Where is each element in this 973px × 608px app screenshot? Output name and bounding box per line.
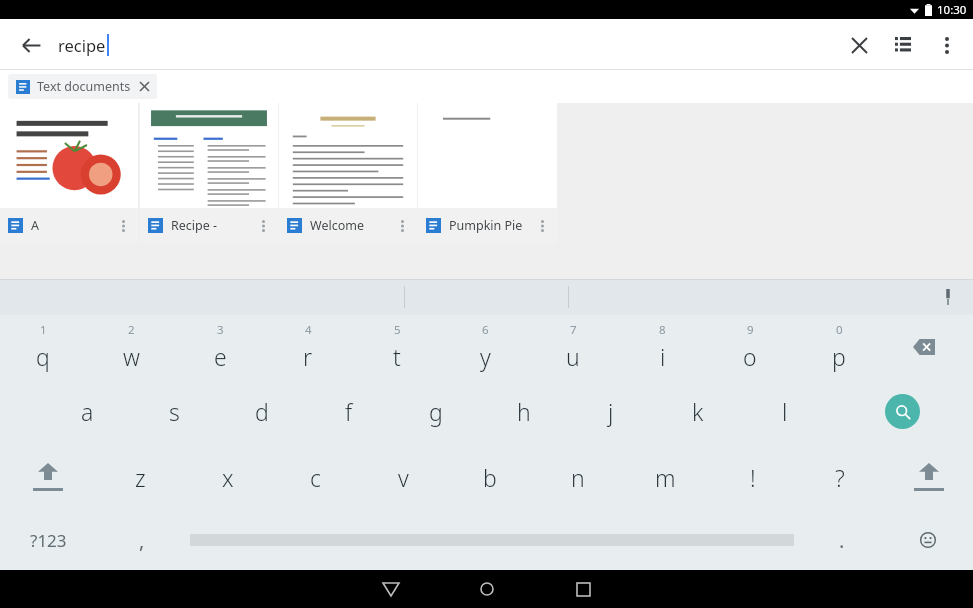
staticText: ?123 xyxy=(30,529,67,552)
button[interactable]: h xyxy=(486,378,562,444)
staticText: 3 xyxy=(217,322,224,338)
staticText: 0 xyxy=(836,322,843,338)
button[interactable]: More options for Recipe - Striped xyxy=(256,215,270,237)
button[interactable]: Clear search xyxy=(837,23,881,67)
button[interactable]: n xyxy=(540,444,616,510)
staticText: s xyxy=(169,396,180,427)
button[interactable]: d xyxy=(224,378,300,444)
button[interactable]: Voice input xyxy=(933,282,963,312)
button[interactable]: j xyxy=(573,378,649,444)
staticText: 9 xyxy=(747,322,754,338)
staticText: d xyxy=(255,396,269,427)
staticText: ! xyxy=(750,462,756,493)
button[interactable]: 7 xyxy=(535,315,611,378)
button[interactable]: 1 xyxy=(5,315,81,378)
button[interactable]: Emoji xyxy=(898,510,958,570)
button[interactable]: 0 xyxy=(801,315,877,378)
staticText: o xyxy=(743,341,757,372)
staticText: c xyxy=(310,462,321,493)
staticText: 10:30 xyxy=(937,2,967,18)
button[interactable]: Backspace xyxy=(900,315,948,378)
button[interactable]: Back xyxy=(14,28,48,62)
button[interactable]: l xyxy=(747,378,823,444)
button[interactable]: More options for A Delicio...recipe xyxy=(116,215,130,237)
button[interactable]: z xyxy=(102,444,178,510)
button[interactable]: g xyxy=(398,378,474,444)
button[interactable]: 5 xyxy=(359,315,435,378)
staticText: Recipe - Striped xyxy=(171,217,256,234)
button[interactable]: ?123 xyxy=(0,510,96,570)
staticText: b xyxy=(483,462,497,493)
button[interactable]: x xyxy=(190,444,266,510)
staticText: u xyxy=(566,341,580,372)
button[interactable]: Text documents xyxy=(8,74,157,99)
staticText: f xyxy=(345,396,353,427)
button[interactable]: 2 xyxy=(93,315,169,378)
staticText: Pumpkin Pie xyxy=(449,217,523,234)
button[interactable]: s xyxy=(136,378,212,444)
button[interactable]: ? xyxy=(802,444,878,510)
staticText: e xyxy=(214,341,227,372)
button[interactable]: Recent apps xyxy=(553,570,613,608)
staticText: 5 xyxy=(394,322,401,338)
button[interactable]: . xyxy=(812,510,872,570)
button[interactable]: Search xyxy=(874,378,930,444)
staticText: w xyxy=(123,341,140,372)
button[interactable]: b xyxy=(452,444,528,510)
staticText: ? xyxy=(835,462,845,493)
staticText: a xyxy=(81,396,94,427)
button[interactable]: 4 xyxy=(270,315,346,378)
staticText: k xyxy=(692,396,704,427)
button[interactable]: More options for Pumpkin Pie xyxy=(535,215,549,237)
staticText: l xyxy=(782,396,788,427)
staticText: i xyxy=(660,341,666,372)
staticText: , xyxy=(139,527,145,554)
button[interactable]: Pumpkin Pie xyxy=(418,103,557,243)
button[interactable]: ! xyxy=(715,444,791,510)
button[interactable]: Back xyxy=(361,570,421,608)
staticText: p xyxy=(832,341,846,372)
staticText: h xyxy=(517,396,531,427)
staticText: 7 xyxy=(570,322,577,338)
button[interactable]: A Delicio...recipe xyxy=(0,103,138,243)
button[interactable]: , xyxy=(112,510,172,570)
button[interactable]: Shift xyxy=(885,444,973,510)
staticText: m xyxy=(655,462,676,493)
staticText: A Delicio...recipe xyxy=(31,217,116,234)
button[interactable]: More options for Welcome Letter xyxy=(395,215,409,237)
button[interactable]: k xyxy=(660,378,736,444)
staticText: 2 xyxy=(128,322,135,338)
button[interactable]: Home xyxy=(457,570,517,608)
button[interactable]: m xyxy=(627,444,703,510)
button[interactable]: c xyxy=(277,444,353,510)
staticText: 6 xyxy=(482,322,489,338)
staticText: t xyxy=(393,341,401,372)
button[interactable]: 6 xyxy=(447,315,523,378)
button[interactable]: Welcome Letter xyxy=(279,103,417,243)
staticText: r xyxy=(303,341,313,372)
staticText: n xyxy=(571,462,585,493)
staticText: 1 xyxy=(40,322,47,338)
button[interactable]: More options xyxy=(925,23,969,67)
staticText: v xyxy=(398,462,409,493)
button[interactable]: a xyxy=(49,378,125,444)
button[interactable]: 9 xyxy=(712,315,788,378)
button[interactable]: 8 xyxy=(624,315,700,378)
button[interactable]: 3 xyxy=(182,315,258,378)
staticText: Text documents xyxy=(37,78,131,95)
staticText: j xyxy=(608,396,614,427)
button[interactable]: List view xyxy=(881,23,925,67)
staticText: y xyxy=(480,341,491,372)
staticText: 4 xyxy=(305,322,312,338)
staticText: recipe xyxy=(58,34,106,56)
button[interactable]: f xyxy=(311,378,387,444)
button[interactable]: Shift xyxy=(0,444,96,510)
button[interactable]: Recipe - Striped xyxy=(140,103,278,243)
button[interactable]: Space xyxy=(190,510,794,570)
staticText: q xyxy=(36,341,50,372)
staticText: Welcome Letter xyxy=(310,217,395,234)
staticText: g xyxy=(429,396,443,427)
button[interactable]: v xyxy=(365,444,441,510)
staticText: . xyxy=(839,527,845,554)
staticText: x xyxy=(222,462,234,493)
